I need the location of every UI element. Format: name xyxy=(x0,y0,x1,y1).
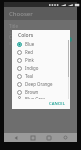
staticText: CANCEL xyxy=(49,101,65,107)
button[interactable]: Indigo xyxy=(12,64,70,72)
button[interactable]: Home xyxy=(44,133,53,142)
button[interactable]: Back xyxy=(11,133,20,142)
button[interactable]: Overview xyxy=(61,133,70,142)
staticText: Pink xyxy=(25,57,34,63)
button[interactable]: Blue Grey xyxy=(12,96,70,99)
staticText: Title xyxy=(9,23,18,29)
button[interactable]: Teal xyxy=(12,72,70,80)
staticText: Brown xyxy=(25,89,39,95)
button[interactable]: Brown xyxy=(12,88,70,96)
button[interactable]: Deep Orange xyxy=(12,80,70,88)
staticText: Blue Grey xyxy=(25,96,45,99)
staticText: Colors xyxy=(18,32,34,39)
button[interactable]: CANCEL xyxy=(44,99,70,109)
button[interactable]: Title xyxy=(4,23,77,34)
staticText: Indigo xyxy=(25,65,39,71)
staticText: Blue xyxy=(9,41,18,45)
staticText: Deep Orange xyxy=(25,81,53,87)
staticText: Teal xyxy=(25,73,34,79)
staticText: Subtitle xyxy=(9,30,24,34)
button[interactable]: Red xyxy=(12,48,70,56)
staticText: Chooser xyxy=(9,10,33,18)
button[interactable]: Blue xyxy=(12,40,70,48)
button[interactable]: Colors xyxy=(4,34,77,45)
staticText: Blue xyxy=(25,41,35,47)
button[interactable]: Pink xyxy=(12,56,70,64)
staticText: Red xyxy=(25,49,33,55)
staticText: Colors xyxy=(9,34,23,40)
button[interactable]: Recents xyxy=(28,133,37,142)
